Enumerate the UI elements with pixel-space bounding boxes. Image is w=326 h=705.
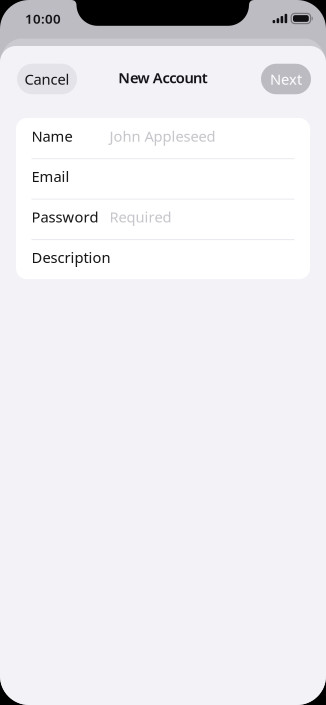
staticText: Description [31, 247, 110, 267]
button[interactable]: Description [16, 239, 310, 279]
staticText: Required [109, 207, 171, 227]
button[interactable]: Cancel [17, 64, 77, 94]
button[interactable]: Email [16, 158, 310, 199]
staticText: John Appleseed [109, 126, 215, 146]
staticText: Email [31, 167, 69, 186]
button[interactable]: Password [16, 199, 310, 239]
staticText: Password [31, 207, 98, 227]
staticText: New Account [118, 68, 208, 87]
button[interactable]: Next [261, 64, 311, 94]
staticText: Next [270, 69, 302, 89]
staticText: Name [31, 126, 72, 146]
staticText: Cancel [24, 69, 69, 89]
button[interactable]: Name [16, 118, 310, 158]
staticText: 10:00 [25, 10, 61, 27]
